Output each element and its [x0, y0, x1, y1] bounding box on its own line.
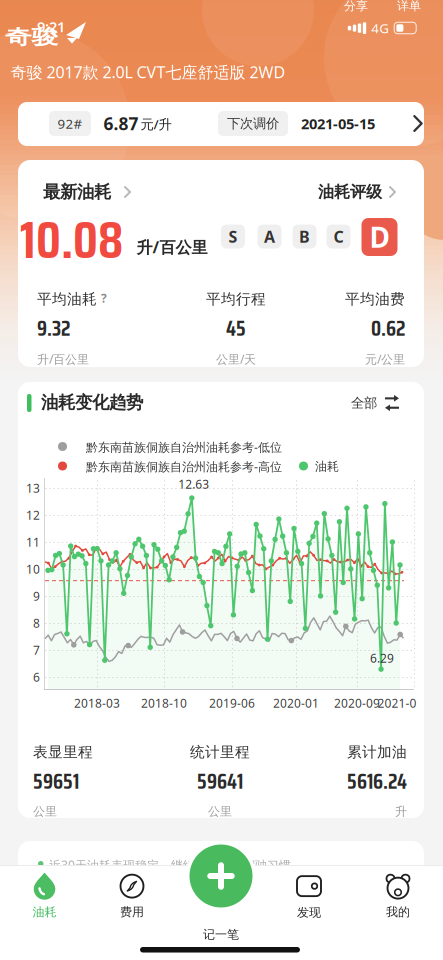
- staticText: 最新油耗: [43, 181, 111, 203]
- staticText: 记一笔: [203, 927, 239, 942]
- staticText: 累计加油: [347, 743, 407, 761]
- staticText: 黔东南苗族侗族自治州油耗参考-高位: [86, 458, 282, 474]
- button[interactable]: 我的: [363, 875, 433, 919]
- staticText: 13: [26, 480, 40, 496]
- staticText: 公里/天: [216, 351, 256, 367]
- staticText: 2021-05-15: [301, 114, 375, 133]
- staticText: B: [299, 226, 310, 247]
- staticText: 92#: [57, 115, 82, 132]
- staticText: 2018-10: [141, 695, 187, 711]
- staticText: 油耗评级: [318, 182, 382, 202]
- staticText: 9:21: [37, 17, 65, 36]
- staticText: C: [333, 226, 343, 247]
- staticText: A: [264, 226, 275, 247]
- button[interactable]: 最新油耗: [43, 181, 131, 203]
- button[interactable]: 92#: [18, 102, 424, 146]
- button[interactable]: 油耗: [9, 873, 79, 919]
- staticText: 统计里程: [190, 743, 250, 761]
- staticText: 9.32: [37, 312, 70, 345]
- staticText: 发现: [297, 905, 321, 920]
- staticText: 平均油费: [345, 290, 405, 308]
- staticText: 表显里程: [33, 743, 93, 761]
- staticText: 45: [226, 312, 246, 345]
- staticText: 全部: [351, 395, 377, 411]
- staticText: 分享: [344, 0, 368, 13]
- staticText: 10.08: [20, 199, 123, 281]
- button[interactable]: 记一笔: [186, 841, 256, 911]
- staticText: 油耗: [32, 905, 56, 919]
- staticText: 2018-03: [74, 695, 120, 711]
- staticText: 11: [26, 534, 40, 550]
- staticText: 元/升: [140, 115, 171, 133]
- staticText: 公里: [208, 804, 232, 819]
- staticText: D: [369, 218, 389, 256]
- staticText: 4G: [371, 19, 389, 37]
- staticText: 费用: [120, 905, 144, 919]
- button[interactable]: 分享: [344, 0, 368, 13]
- staticText: 6: [33, 669, 40, 685]
- staticText: 升/百公里: [37, 351, 89, 367]
- button[interactable]: 费用: [97, 875, 167, 919]
- staticText: 59641: [197, 765, 243, 798]
- staticText: 平均油耗: [37, 290, 97, 308]
- staticText: 59651: [33, 765, 79, 798]
- staticText: 6.29: [370, 650, 394, 666]
- staticText: 详单: [397, 0, 421, 13]
- button[interactable]: 油耗评级: [318, 182, 396, 202]
- staticText: 2020-01: [273, 695, 319, 711]
- staticText: S: [228, 226, 237, 247]
- staticText: 黔东南苗族侗族自治州油耗参考-低位: [86, 439, 282, 455]
- staticText: 升/百公里: [136, 236, 207, 258]
- staticText: 2019-06: [209, 695, 255, 711]
- staticText: 0.62: [371, 312, 405, 345]
- staticText: 公里: [33, 804, 57, 819]
- button[interactable]: 全部: [351, 395, 399, 411]
- staticText: 6.87: [103, 112, 138, 135]
- button[interactable]: 发现: [274, 876, 344, 920]
- button[interactable]: 详单: [397, 0, 421, 13]
- staticText: 9: [33, 588, 40, 604]
- staticText: 10: [26, 561, 40, 577]
- staticText: 平均行程: [206, 290, 266, 308]
- staticText: 2020-09: [334, 695, 380, 711]
- staticText: 12: [26, 507, 40, 523]
- staticText: 我的: [386, 905, 410, 919]
- staticText: 5616.24: [347, 765, 407, 798]
- staticText: 下次调价: [227, 115, 279, 132]
- staticText: 7: [33, 642, 40, 658]
- staticText: 奇骏 2017款 2.0L CVT七座舒适版 2WD: [10, 61, 285, 83]
- staticText: 奇骏: [11, 25, 51, 49]
- staticText: 2021-0: [377, 695, 416, 711]
- staticText: ?: [101, 290, 107, 306]
- staticText: 油耗: [315, 459, 339, 474]
- staticText: 油耗变化趋势: [41, 392, 143, 413]
- staticText: 元/公里: [365, 351, 405, 367]
- staticText: 8: [33, 615, 40, 631]
- staticText: 近30天油耗表现稳定，继续保持良好驾驶习惯: [49, 857, 291, 873]
- staticText: 升: [395, 804, 407, 819]
- staticText: 12.63: [178, 476, 209, 492]
